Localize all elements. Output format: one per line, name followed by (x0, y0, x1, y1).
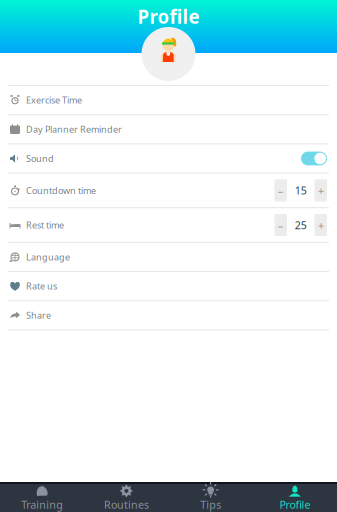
button[interactable]: Increase (314, 214, 327, 236)
button[interactable]: Sound (0, 144, 337, 174)
button[interactable]: Exercise Time (0, 86, 337, 115)
staticText: + (318, 217, 324, 233)
button[interactable]: Profile (253, 484, 337, 512)
staticText: Rest time (26, 219, 64, 231)
staticText: Profile (279, 497, 310, 512)
button[interactable]: Share (0, 301, 337, 330)
button[interactable]: Day Planner Reminder (0, 115, 337, 144)
button[interactable]: Increase (314, 179, 327, 201)
button[interactable]: Decrease (274, 179, 287, 201)
staticText: 25 (295, 218, 307, 232)
staticText: 15 (295, 183, 307, 198)
button[interactable]: Rest time (0, 208, 337, 243)
staticText: + (318, 183, 324, 198)
button[interactable]: Tips (168, 484, 253, 512)
button[interactable]: Decrease (274, 214, 287, 236)
button[interactable]: Rate us (0, 272, 337, 301)
staticText: Share (26, 309, 51, 321)
staticText: Rate us (26, 280, 57, 292)
staticText: Exercise Time (26, 94, 82, 106)
staticText: – (278, 217, 284, 233)
button[interactable]: Training (0, 484, 84, 512)
staticText: – (278, 183, 284, 198)
staticText: Training (21, 497, 63, 512)
staticText: Sound (26, 152, 54, 165)
staticText: Language (26, 251, 70, 263)
staticText: Tips (200, 497, 221, 512)
staticText: Countdown time (26, 184, 96, 196)
staticText: Routines (104, 497, 149, 512)
staticText: Day Planner Reminder (26, 123, 122, 135)
staticText: Profile (137, 4, 199, 29)
button[interactable]: Language (0, 243, 337, 272)
button[interactable]: Routines (84, 484, 168, 512)
button[interactable]: Countdown time (0, 174, 337, 208)
